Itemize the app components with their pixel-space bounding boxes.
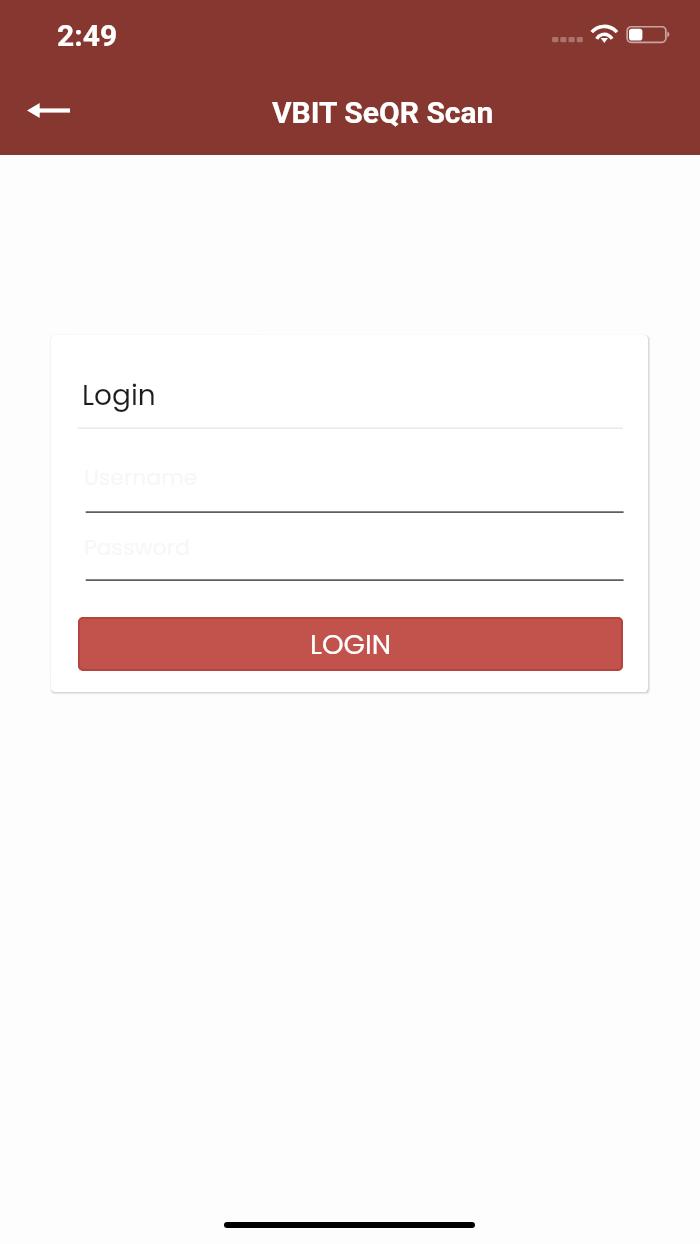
staticText: VBIT SeQR Scan xyxy=(272,95,494,130)
button[interactable]: Back xyxy=(18,80,78,140)
other: Status icons xyxy=(0,0,700,155)
staticText: Login xyxy=(82,376,156,415)
button[interactable]: Username xyxy=(82,453,627,515)
button[interactable]: LOGIN xyxy=(78,617,623,671)
staticText: 2:49 xyxy=(57,18,118,53)
button[interactable]: Password xyxy=(82,523,627,583)
staticText: LOGIN xyxy=(310,625,391,663)
